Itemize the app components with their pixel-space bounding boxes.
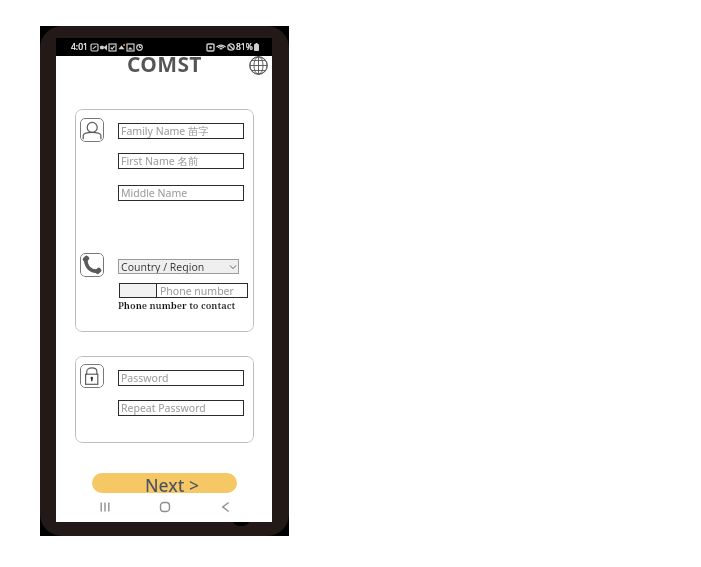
staticText: Family Name 苗字	[121, 124, 210, 138]
button[interactable]: Next >	[92, 473, 237, 493]
button[interactable]: Phone number	[157, 283, 248, 298]
staticText: Phone number	[160, 284, 234, 298]
button[interactable]: Recent apps	[95, 497, 115, 517]
staticText: Next >	[145, 473, 200, 493]
button[interactable]: Language	[248, 55, 268, 75]
staticText: 4:01	[71, 41, 88, 53]
button[interactable]: Password	[118, 370, 244, 386]
staticText: Phone number to contact	[118, 299, 236, 312]
button[interactable]: Country / Region	[118, 259, 239, 274]
button[interactable]	[119, 283, 156, 298]
staticText: COMST	[127, 50, 202, 75]
button[interactable]: Repeat Password	[118, 400, 244, 416]
staticText: Country / Region	[121, 260, 205, 274]
button[interactable]: Home	[155, 497, 175, 517]
button[interactable]: Family Name 苗字	[118, 123, 244, 139]
button[interactable]: First Name 名前	[118, 153, 244, 169]
button[interactable]: Middle Name	[118, 185, 244, 201]
button[interactable]: Family Name 苗字	[75, 109, 254, 332]
staticText: Repeat Password	[121, 401, 206, 415]
button[interactable]: Back	[215, 497, 235, 517]
staticText: Middle Name	[121, 186, 188, 200]
staticText: Password	[121, 371, 169, 385]
staticText: First Name 名前	[121, 154, 199, 168]
button[interactable]: Password	[75, 356, 254, 443]
staticText: 81%	[236, 41, 253, 53]
